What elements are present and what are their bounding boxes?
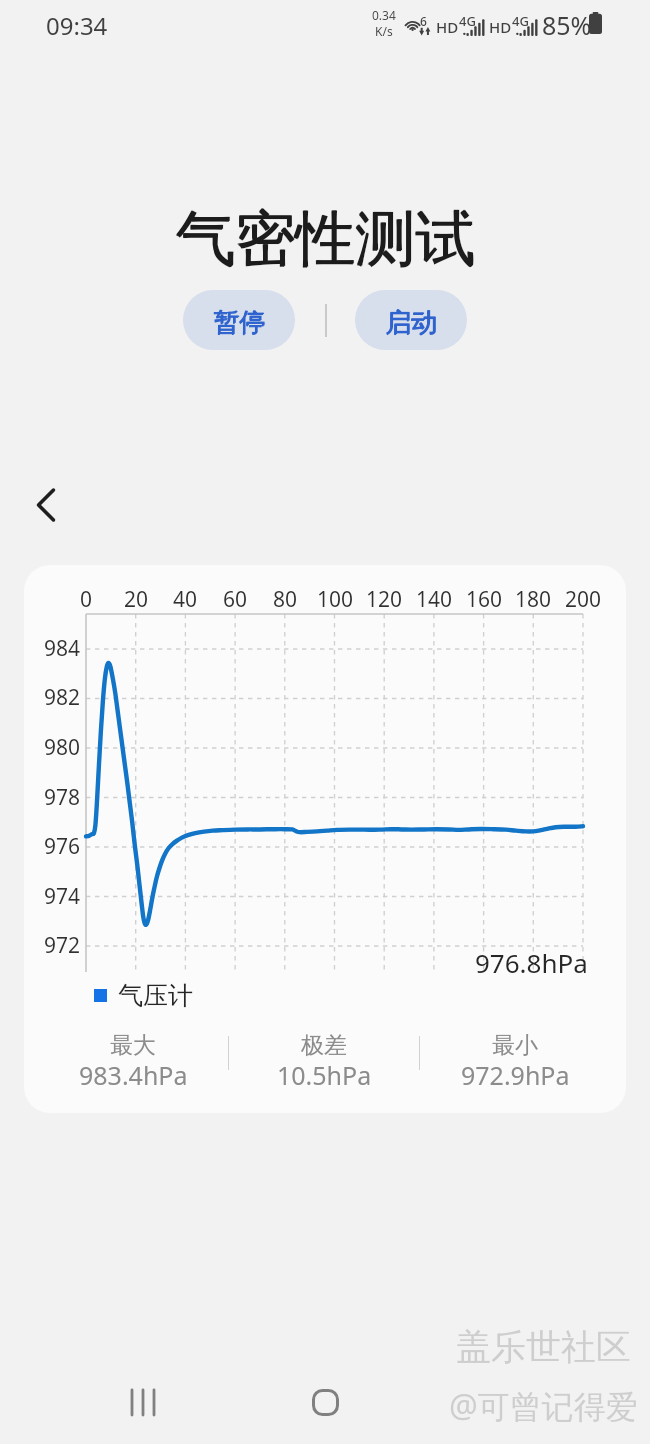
staticText: 85% [542,8,592,42]
staticText: 极差 [301,1031,347,1060]
staticText: 0 [56,585,116,614]
staticText: 60 [205,585,265,614]
staticText: 6 [420,13,427,29]
staticText: 120 [354,585,414,614]
staticText: HD [436,17,459,37]
staticText: 0.34 [372,7,396,23]
staticText: 气压计 [118,980,193,1011]
staticText: 972 [30,931,80,960]
staticText: 140 [404,585,464,614]
staticText: 80 [255,585,315,614]
button[interactable]: Back [14,473,78,537]
staticText: 4G [512,12,529,30]
staticText: HD [489,17,512,37]
staticText: 暂停 [213,307,265,340]
staticText: 978 [30,783,80,812]
staticText: 气密性测试 [1,201,650,277]
button[interactable]: Recent apps [112,1372,172,1432]
staticText: 最大 [110,1031,156,1060]
staticText: 暂停 [213,306,265,339]
button[interactable]: 暂停 [183,290,295,350]
staticText: 180 [503,585,563,614]
staticText: 09:34 [46,9,108,42]
staticText: 200 [553,585,613,614]
staticText: 983.4hPa [79,1058,188,1092]
button[interactable]: 启动 [355,290,467,350]
staticText: 最小 [492,1031,538,1060]
staticText: @可曾记得爱 [449,1384,638,1428]
staticText: 暂停 [214,306,266,339]
staticText: 984 [30,634,80,663]
staticText: 972.9hPa [461,1058,570,1092]
staticText: 980 [30,733,80,762]
staticText: 启动 [385,307,437,340]
staticText: 40 [155,585,215,614]
staticText: 10.5hPa [277,1058,372,1092]
button[interactable]: Home [295,1372,355,1432]
staticText: 100 [305,585,365,614]
staticText: 4G [459,12,476,30]
staticText: 气密性测试 [0,201,650,277]
staticText: 20 [106,585,166,614]
staticText: 160 [454,585,514,614]
staticText: 976.8hPa [475,945,588,980]
staticText: 启动 [386,306,438,339]
staticText: 982 [30,683,80,712]
staticText: K/s [375,23,393,39]
staticText: 974 [30,882,80,911]
staticText: 启动 [385,306,437,339]
staticText: 气密性测试 [0,202,650,278]
button[interactable]: Back [478,1372,538,1432]
staticText: 盖乐世社区 [456,1325,631,1369]
staticText: 976 [30,832,80,861]
